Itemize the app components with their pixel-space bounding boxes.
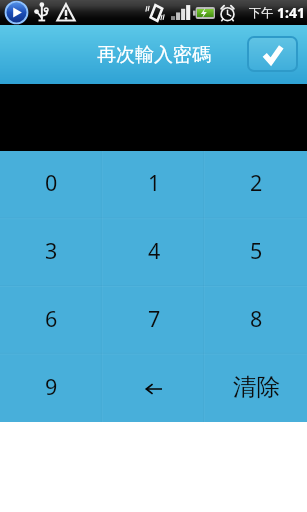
button[interactable]: 1 [103, 151, 205, 218]
button[interactable]: 清除 [205, 354, 307, 422]
button[interactable]: 7 [103, 286, 205, 354]
button[interactable]: 確定 [249, 38, 296, 70]
button[interactable]: 刪除 [103, 354, 205, 422]
staticText: 7 [148, 304, 161, 333]
staticText: 6 [45, 304, 58, 333]
button[interactable]: 4 [103, 218, 205, 286]
staticText: 8 [250, 304, 263, 333]
other: 刪除 [103, 355, 205, 423]
button[interactable]: 9 [0, 354, 103, 422]
staticText: 2 [250, 168, 263, 197]
button[interactable]: 5 [205, 218, 307, 286]
button[interactable]: 2 [205, 151, 307, 218]
staticText: 4 [148, 236, 161, 265]
staticText: 再次輸入密碼 [97, 43, 211, 67]
button[interactable]: 8 [205, 286, 307, 354]
staticText: 下午 [249, 5, 273, 20]
staticText: 1:41 [277, 3, 305, 22]
staticText: 0 [45, 168, 58, 197]
button[interactable]: 6 [0, 286, 103, 354]
button[interactable]: 0 [0, 151, 103, 218]
staticText: 1 [148, 168, 161, 197]
staticText: 9 [45, 372, 58, 401]
staticText: 清除 [233, 372, 280, 402]
staticText: 3 [45, 236, 58, 265]
staticText: 5 [250, 236, 263, 265]
button[interactable]: 3 [0, 218, 103, 286]
